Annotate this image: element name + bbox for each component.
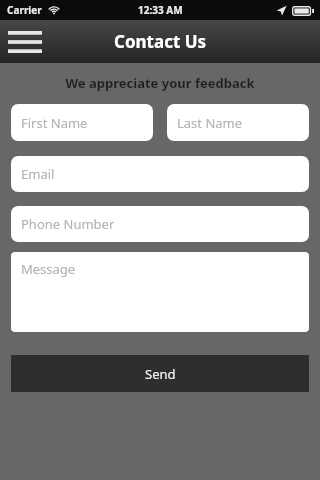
button[interactable]: Email (11, 156, 309, 192)
staticText: Phone Number (21, 215, 115, 233)
staticText: We appreciate your feedback (0, 74, 320, 92)
staticText: Message (21, 260, 76, 278)
staticText: First Name (21, 114, 88, 132)
button[interactable]: First Name (11, 104, 153, 141)
staticText: 12:33 AM (138, 3, 183, 17)
staticText: Send (145, 365, 176, 383)
staticText: Last Name (177, 114, 243, 132)
button[interactable]: Open navigation menu (4, 24, 46, 60)
button[interactable]: Message (11, 252, 309, 332)
staticText: Contact Us (114, 30, 207, 53)
button[interactable]: Send (11, 355, 309, 392)
staticText: Email (21, 165, 55, 183)
staticText: Carrier (7, 3, 42, 17)
button[interactable]: Last Name (167, 104, 309, 141)
button[interactable]: Phone Number (11, 206, 309, 242)
